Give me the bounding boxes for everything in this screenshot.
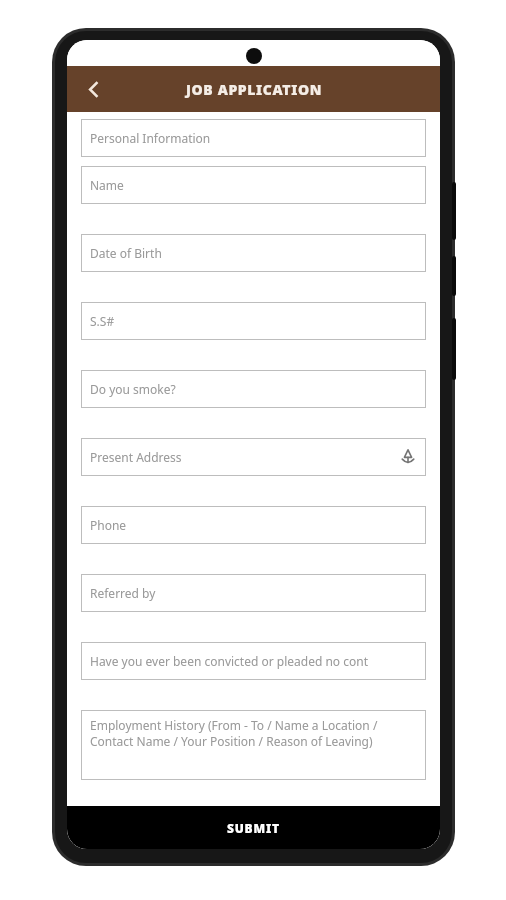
- staticText: Present Address: [90, 449, 182, 465]
- staticText: JOB APPLICATION: [186, 80, 322, 99]
- staticText: S.S#: [90, 313, 115, 329]
- staticText: Phone: [90, 517, 127, 533]
- button[interactable]: Back: [73, 69, 113, 109]
- button[interactable]: Use current location: [399, 448, 417, 466]
- button[interactable]: Referred by: [81, 574, 426, 612]
- button[interactable]: Name: [81, 166, 426, 204]
- staticText: SUBMIT: [227, 820, 280, 836]
- button[interactable]: Do you smoke?: [81, 370, 426, 408]
- button[interactable]: Present Address: [81, 438, 426, 476]
- staticText: Name: [90, 177, 124, 193]
- staticText: Employment History (From - To / Name a L…: [90, 717, 420, 749]
- staticText: Do you smoke?: [90, 381, 176, 397]
- staticText: Referred by: [90, 585, 156, 601]
- staticText: Personal Information: [90, 130, 211, 146]
- button[interactable]: S.S#: [81, 302, 426, 340]
- button[interactable]: Employment History (From - To / Name a L…: [81, 710, 426, 780]
- button[interactable]: Phone: [81, 506, 426, 544]
- staticText: Have you ever been convicted or pleaded …: [90, 653, 368, 669]
- staticText: Date of Birth: [90, 245, 162, 261]
- button[interactable]: Personal Information: [81, 119, 426, 157]
- button[interactable]: Have you ever been convicted or pleaded …: [81, 642, 426, 680]
- button[interactable]: SUBMIT: [67, 806, 440, 849]
- button[interactable]: Date of Birth: [81, 234, 426, 272]
